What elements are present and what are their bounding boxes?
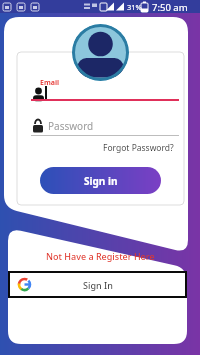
button[interactable] <box>31 86 179 101</box>
button[interactable]: Not Have a Register Here <box>0 250 200 262</box>
button[interactable]: Sign in <box>40 167 161 194</box>
staticText: 7:50 am <box>152 1 188 14</box>
staticText: Not Have a Register Here <box>46 250 155 262</box>
staticText: Email <box>40 78 60 88</box>
staticText: Forgot Password? <box>103 142 174 154</box>
staticText: Sign in <box>84 174 118 188</box>
staticText: Sign In <box>83 279 113 291</box>
button[interactable]: Forgot Password? <box>103 142 174 154</box>
button[interactable]: Sign In <box>8 271 187 298</box>
staticText: 31% <box>127 2 142 12</box>
button[interactable]: Password <box>31 118 179 136</box>
staticText: Password <box>48 119 94 133</box>
